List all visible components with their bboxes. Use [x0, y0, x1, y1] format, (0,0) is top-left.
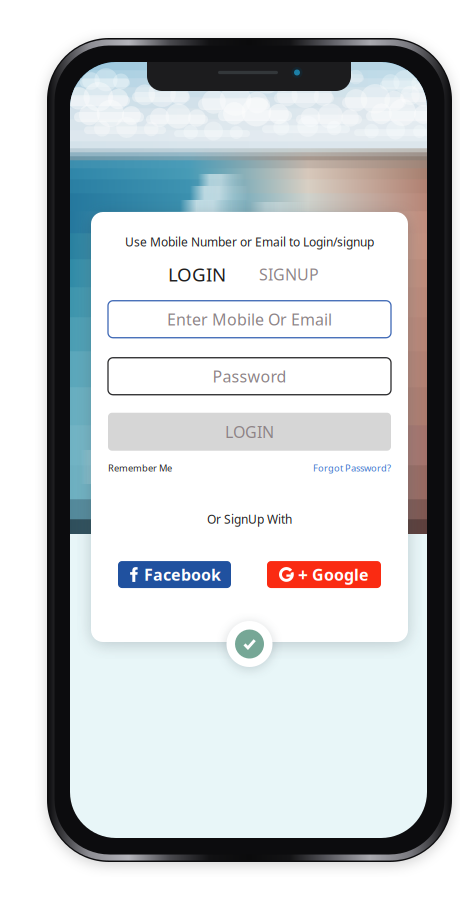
button[interactable]: LOGIN: [168, 262, 226, 287]
staticText: Enter Mobile Or Email: [167, 309, 332, 330]
staticText: Google: [312, 564, 369, 585]
button[interactable]: Facebook: [118, 561, 231, 588]
staticText: LOGIN: [168, 262, 226, 287]
button[interactable]: Forgot Password?: [313, 462, 391, 474]
staticText: Use Mobile Number or Email to Login/sign…: [125, 234, 374, 250]
button[interactable]: LOGIN: [108, 413, 391, 451]
staticText: Remember Me: [108, 462, 172, 474]
staticText: Password: [212, 366, 286, 387]
staticText: LOGIN: [225, 421, 274, 442]
staticText: SIGNUP: [259, 264, 319, 285]
button[interactable]: SIGNUP: [259, 264, 319, 285]
button[interactable]: +: [267, 561, 381, 588]
staticText: Facebook: [144, 564, 221, 585]
staticText: +: [298, 563, 308, 586]
button[interactable]: Password: [108, 358, 391, 395]
staticText: Or SignUp With: [207, 511, 292, 527]
staticText: Forgot Password?: [313, 462, 391, 474]
button[interactable]: Enter Mobile Or Email: [108, 301, 391, 338]
